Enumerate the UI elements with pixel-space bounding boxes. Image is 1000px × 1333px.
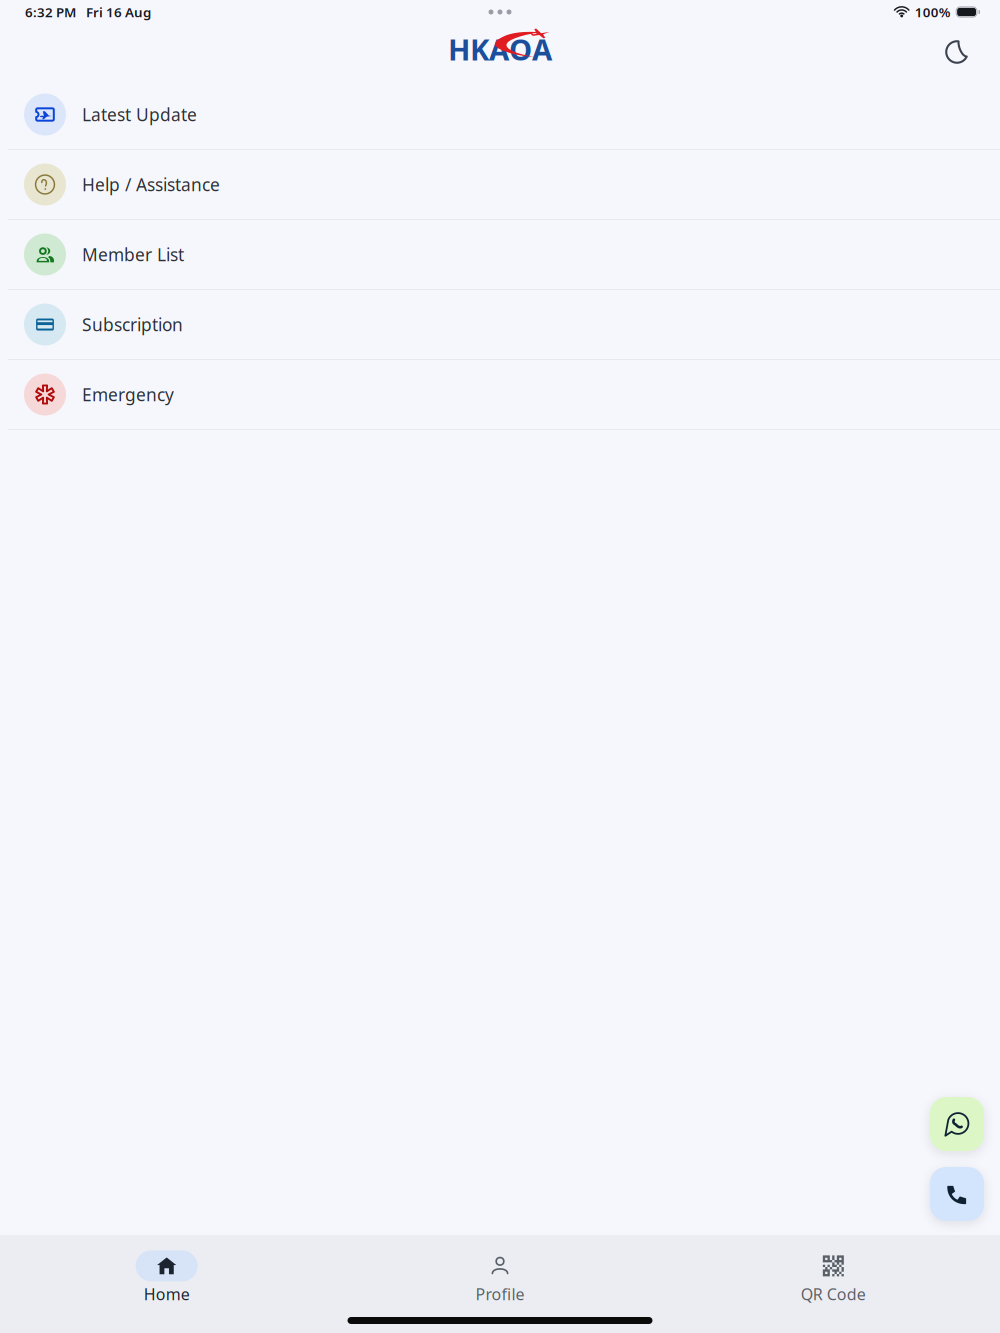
staticText: Profile [475,1283,524,1305]
staticText: 100% [915,3,951,21]
button[interactable]: WhatsApp [930,1097,984,1151]
button[interactable]: QR Code [667,1250,1000,1305]
staticText: Home [144,1283,190,1305]
staticText: Fri 16 Aug [86,3,151,21]
staticText: HKAOA [448,29,552,68]
staticText: QR Code [801,1283,866,1305]
staticText: Member List [82,243,184,266]
staticText: Subscription [82,313,183,336]
staticText: Emergency [82,383,174,406]
staticText: 6:32 PM [25,3,76,21]
button[interactable]: Emergency [0,360,1000,430]
button[interactable]: Profile [333,1250,667,1305]
button[interactable]: Help / Assistance [0,150,1000,220]
button[interactable]: Latest Update [0,80,1000,150]
button[interactable]: Member List [0,220,1000,290]
staticText: Help / Assistance [82,173,220,196]
button[interactable]: Call [930,1167,984,1221]
staticText: Latest Update [82,103,197,126]
button[interactable]: Subscription [0,290,1000,360]
button[interactable]: Home [0,1250,333,1305]
button[interactable]: Dark mode [934,29,980,75]
